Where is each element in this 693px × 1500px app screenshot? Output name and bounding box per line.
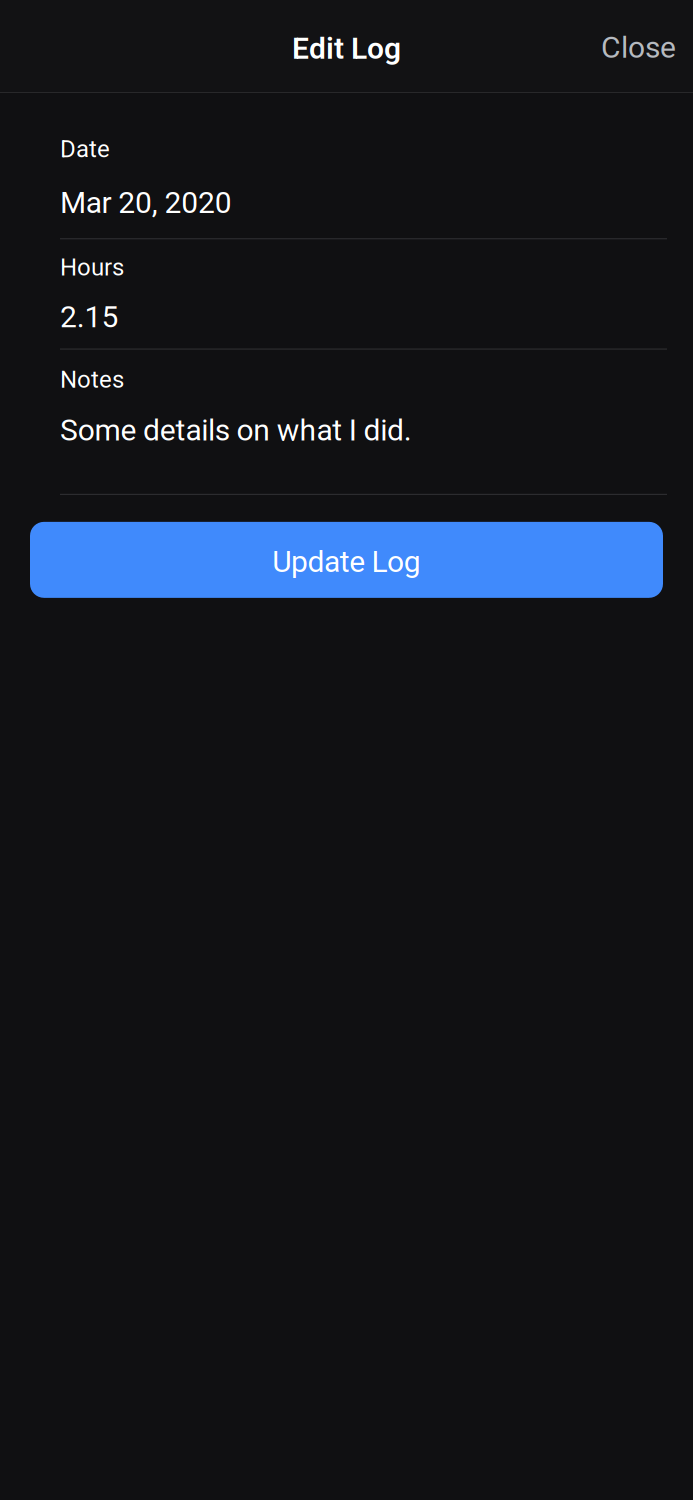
button[interactable]: Hours	[60, 253, 667, 335]
button[interactable]: Update Log	[30, 522, 663, 598]
staticText: Update Log	[272, 544, 421, 579]
button[interactable]: Close	[575, 30, 693, 75]
button[interactable]: Notes	[60, 366, 667, 448]
staticText: Notes	[60, 366, 124, 394]
staticText: Close	[601, 30, 676, 65]
staticText: Some details on what I did.	[60, 413, 412, 448]
staticText: 2.15	[60, 299, 118, 335]
staticText: Mar 20, 2020	[60, 185, 232, 220]
staticText: Hours	[60, 253, 124, 281]
staticText: Date	[60, 135, 110, 163]
staticText: Edit Log	[292, 31, 401, 66]
button[interactable]: Date	[60, 135, 667, 220]
